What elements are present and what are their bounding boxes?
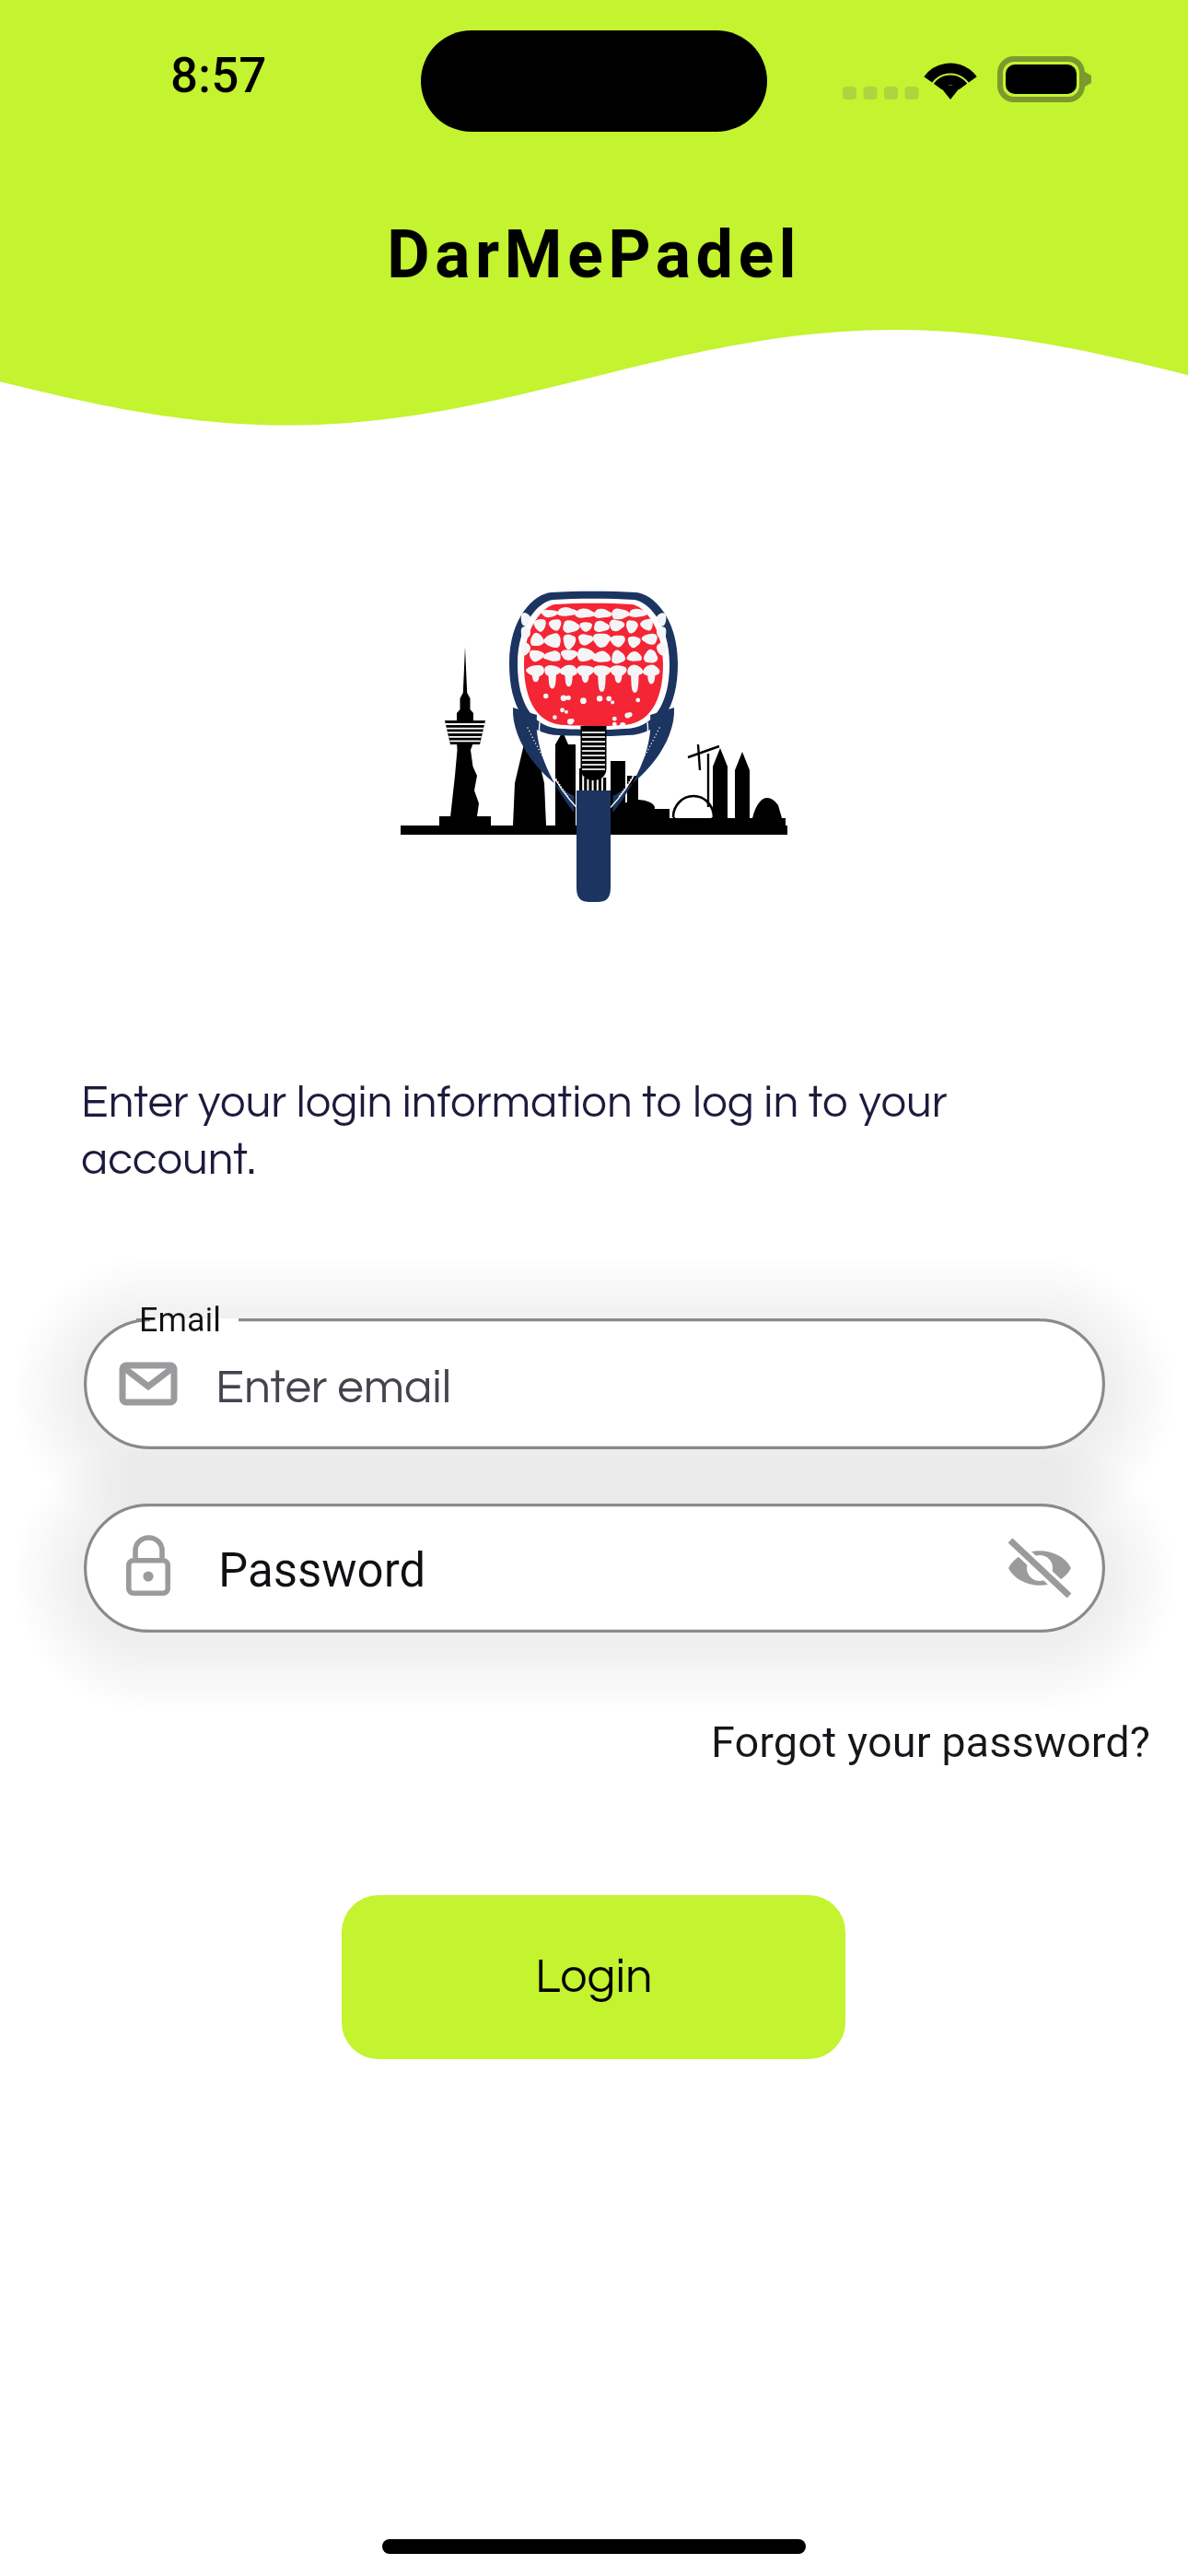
button[interactable]: Forgot your password? bbox=[705, 1711, 1157, 1773]
button[interactable]: Email bbox=[84, 1318, 1105, 1449]
staticText: 8:57 bbox=[170, 47, 267, 104]
staticText: Enter email bbox=[215, 1364, 452, 1412]
button[interactable]: Show password bbox=[989, 1522, 1090, 1614]
staticText: DarMePadel bbox=[0, 216, 1188, 293]
staticText: Forgot your password? bbox=[711, 1716, 1151, 1767]
staticText: Login bbox=[535, 1952, 653, 2002]
staticText: Email bbox=[139, 1301, 222, 1340]
button[interactable]: Password bbox=[84, 1504, 1105, 1633]
staticText: Password bbox=[218, 1543, 426, 1598]
staticText: Enter your login information to log in t… bbox=[81, 1080, 984, 1183]
button[interactable]: Login bbox=[342, 1895, 845, 2059]
